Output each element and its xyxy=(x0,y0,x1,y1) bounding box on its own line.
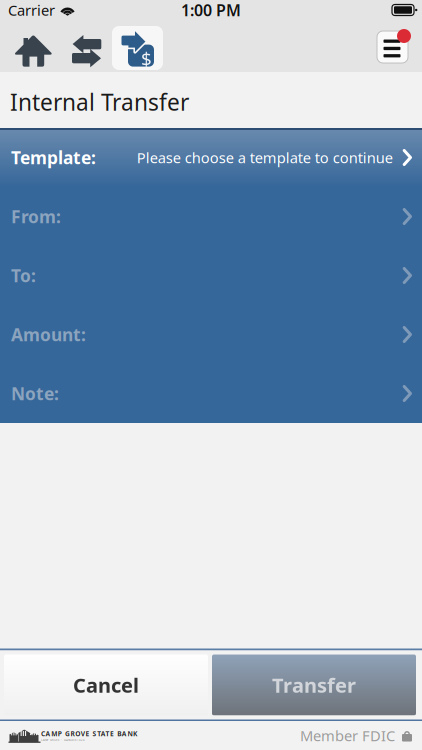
button[interactable]: Transfer xyxy=(212,654,416,715)
staticText: $ xyxy=(141,46,152,71)
button[interactable]: Template: xyxy=(0,128,422,187)
button[interactable]: Menu xyxy=(372,21,414,66)
button[interactable]: To: xyxy=(0,246,422,305)
staticText: CAMP GROVE · ILLINOIS 61424 xyxy=(41,738,85,742)
staticText: 1:00 PM xyxy=(181,0,241,21)
button[interactable]: Home xyxy=(2,26,53,70)
button[interactable]: Amount: xyxy=(0,305,422,364)
staticText: To: xyxy=(11,264,36,287)
staticText: Internal Transfer xyxy=(10,87,189,117)
staticText: CAMP GROVE STATE BANK xyxy=(41,729,137,738)
staticText: Cancel xyxy=(73,672,139,698)
staticText: Transfer xyxy=(272,672,356,698)
button[interactable]: Internal Transfer xyxy=(112,26,163,70)
button[interactable]: From: xyxy=(0,187,422,246)
button[interactable]: Transfers xyxy=(58,26,109,70)
staticText: Please choose a template to continue xyxy=(137,148,393,167)
staticText: Template: xyxy=(11,146,96,169)
staticText: Carrier xyxy=(8,0,55,20)
button[interactable]: Note: xyxy=(0,364,422,423)
staticText: Note: xyxy=(11,382,59,405)
staticText: Amount: xyxy=(11,323,86,346)
staticText: Member FDIC xyxy=(300,726,395,745)
staticText: From: xyxy=(11,205,61,228)
button[interactable]: Cancel xyxy=(4,654,208,715)
